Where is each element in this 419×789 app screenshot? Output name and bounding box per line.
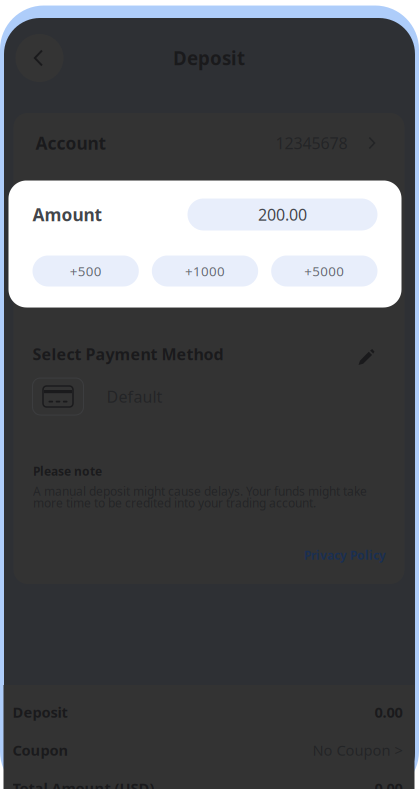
staticText: Please note (33, 463, 102, 479)
button[interactable]: +5000 (271, 255, 377, 286)
staticText: Amount (32, 203, 102, 226)
staticText: 12345678 (275, 132, 347, 154)
staticText: No Coupon > (312, 740, 402, 760)
staticText: 200.00 (258, 204, 307, 225)
button[interactable]: Account (13, 113, 404, 173)
staticText: Total Amount (USD) (12, 778, 154, 789)
staticText: Coupon (12, 740, 68, 760)
staticText: A manual deposit might cause delays. You… (33, 483, 367, 499)
staticText: 0.00 (374, 778, 402, 789)
staticText: +5000 (304, 262, 344, 280)
staticText: Deposit (12, 702, 67, 722)
staticText: 0.00 (374, 702, 402, 722)
staticText: more time to be credited into your tradi… (33, 495, 316, 511)
button[interactable]: Privacy Policy (304, 547, 386, 563)
staticText: Select Payment Method (32, 343, 223, 365)
staticText: Privacy Policy (304, 547, 386, 563)
staticText: Account (35, 131, 106, 154)
button[interactable]: +500 (32, 255, 139, 286)
staticText: Deposit (173, 46, 245, 70)
staticText: +500 (70, 262, 102, 280)
button[interactable]: Back (15, 34, 63, 82)
button[interactable]: Default payment card (32, 378, 83, 415)
button[interactable]: +1000 (152, 255, 258, 286)
button[interactable]: Edit payment method (353, 341, 379, 367)
staticText: +1000 (185, 262, 225, 280)
staticText: Default (106, 386, 162, 407)
